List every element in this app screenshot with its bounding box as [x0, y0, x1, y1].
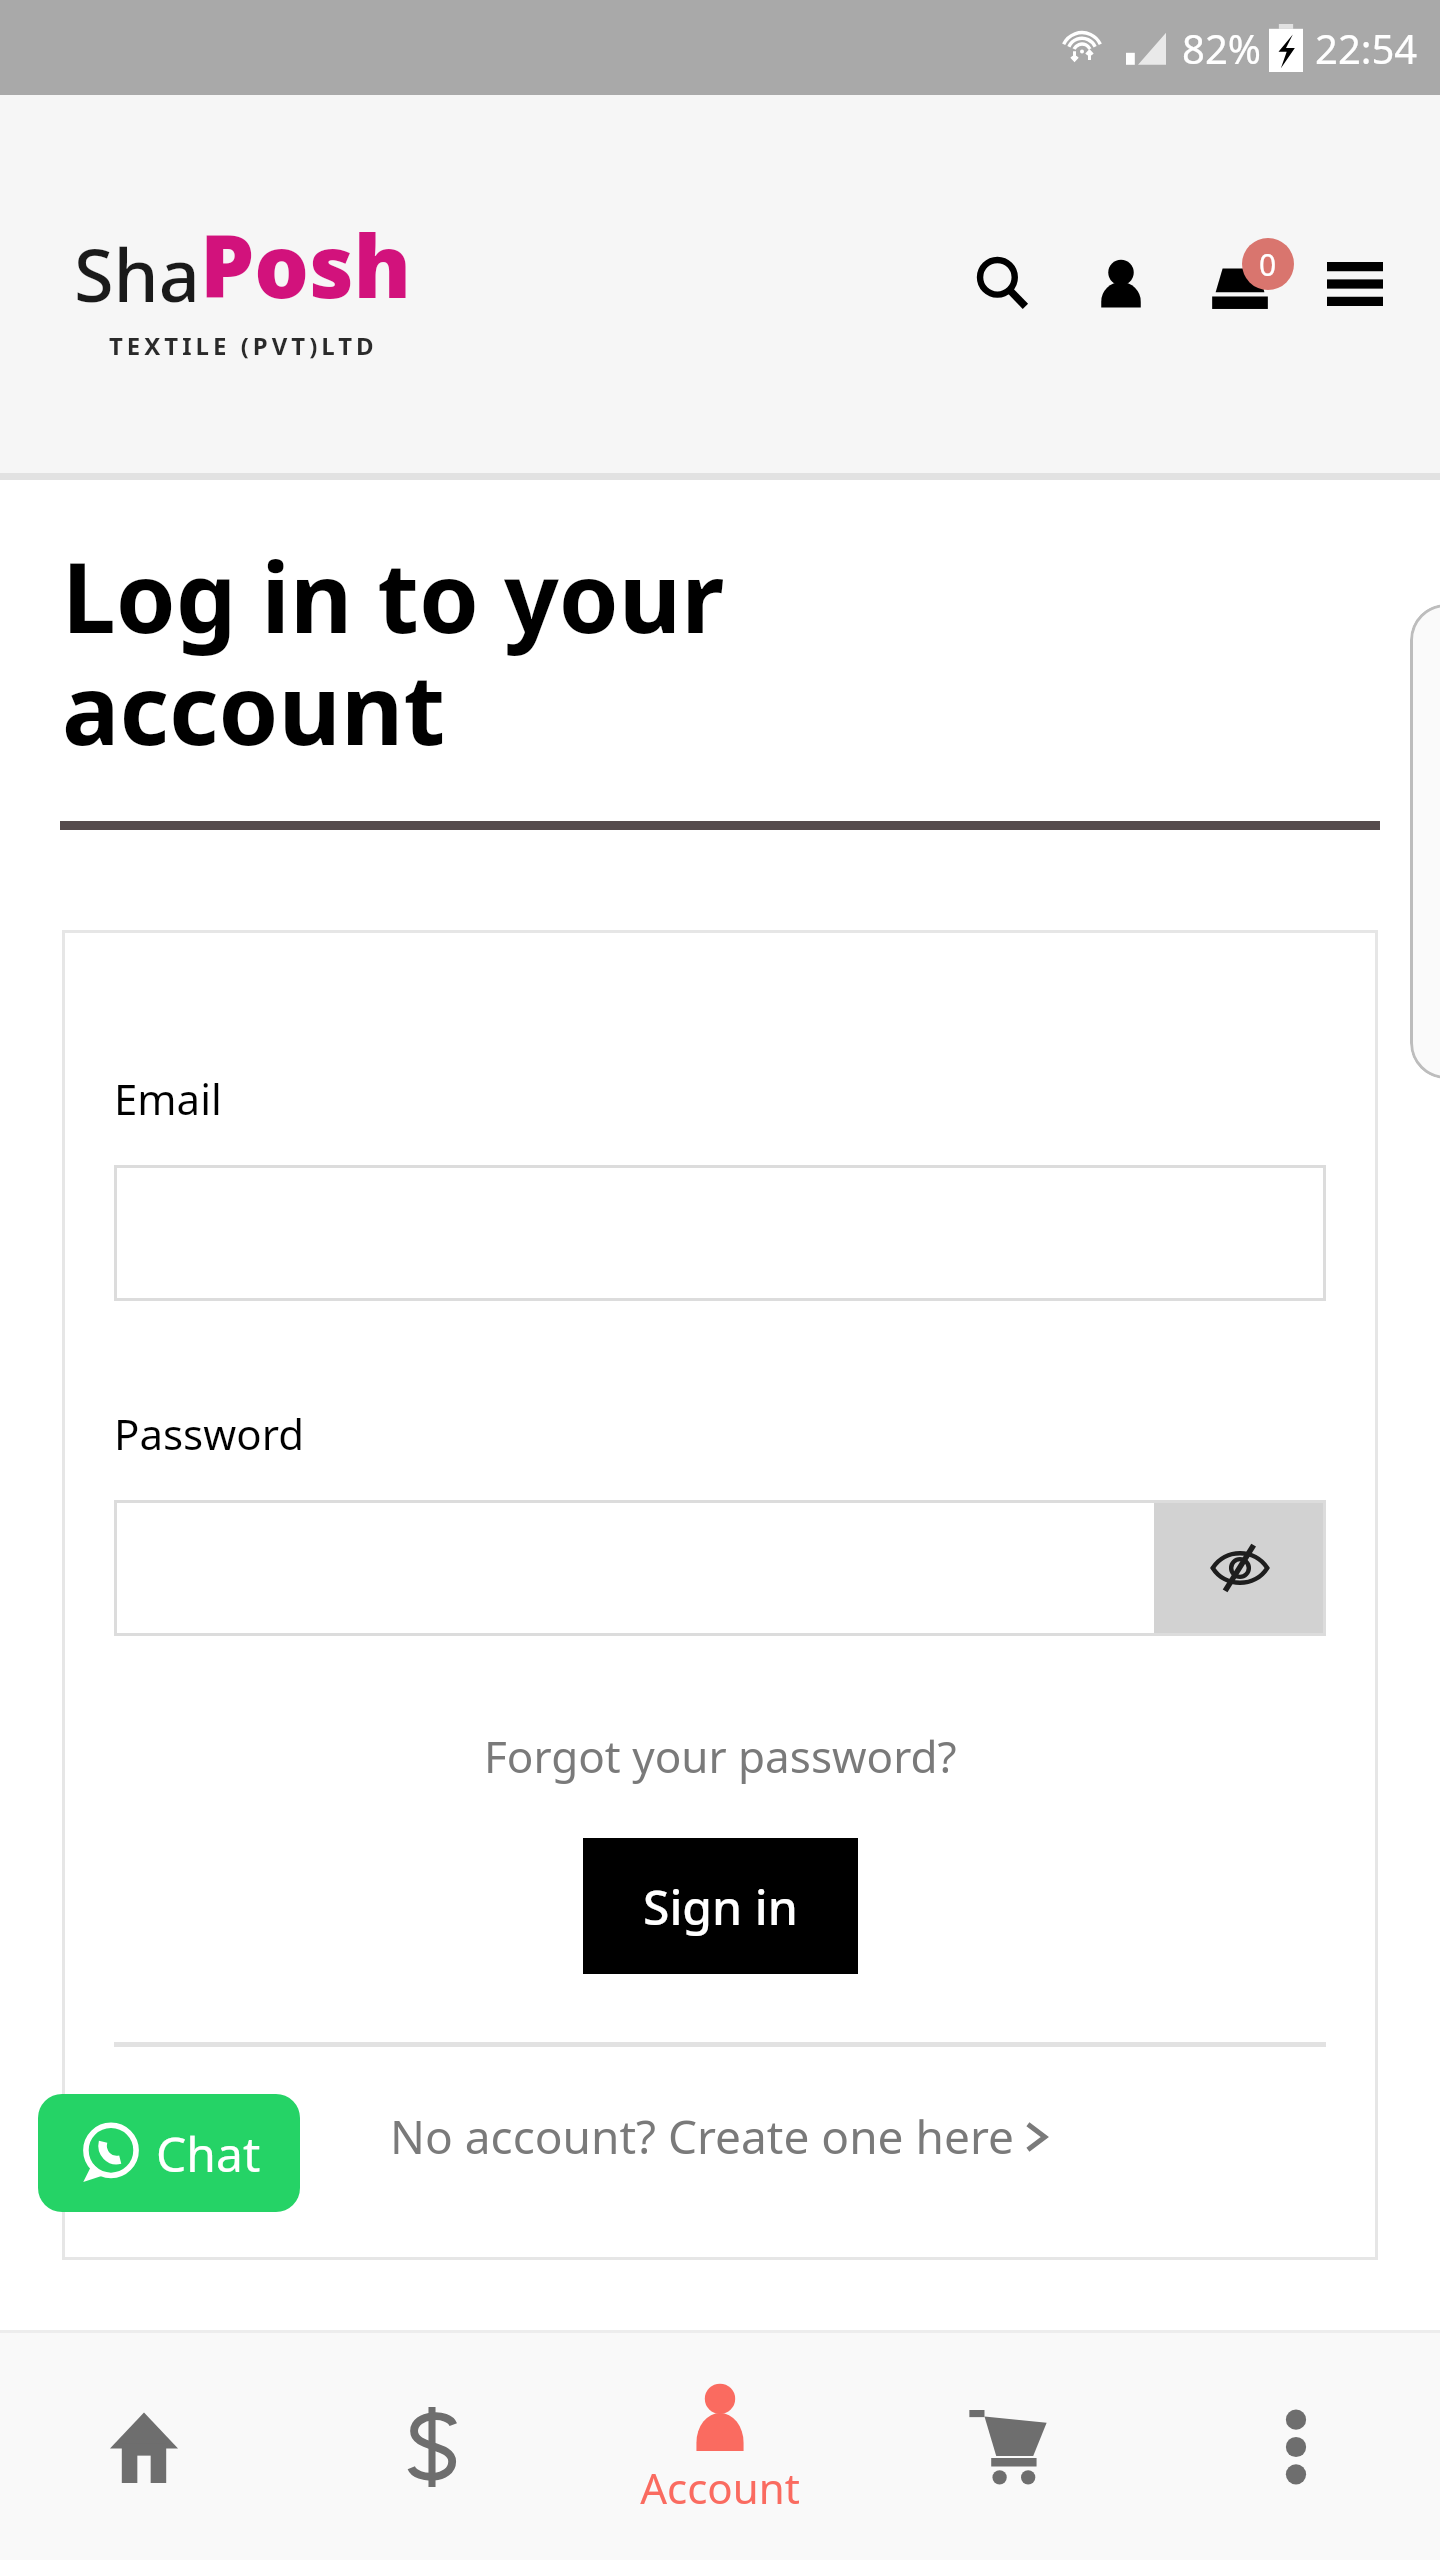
- button[interactable]: [114, 1500, 1154, 1636]
- button[interactable]: More: [1152, 2333, 1440, 2560]
- staticText: Log in to your account: [62, 530, 725, 773]
- staticText: 0: [1259, 244, 1277, 285]
- button[interactable]: [114, 1165, 1326, 1301]
- button[interactable]: Search: [958, 239, 1048, 329]
- button[interactable]: No account? Create one here: [390, 2105, 1050, 2168]
- staticText: Sha: [74, 225, 200, 323]
- button[interactable]: Forgot your password?: [484, 1726, 957, 1786]
- staticText: Sign in: [643, 1874, 798, 1939]
- staticText: Account: [640, 2459, 800, 2516]
- button[interactable]: Show password: [1154, 1500, 1326, 1636]
- button[interactable]: Account: [576, 2333, 864, 2560]
- staticText: TEXTILE (PVT)LTD: [109, 329, 378, 362]
- button[interactable]: Sha: [74, 206, 412, 362]
- button[interactable]: Sign in: [583, 1838, 858, 1974]
- staticText: Password: [114, 1405, 304, 1462]
- staticText: No account? Create one here: [390, 2105, 1014, 2168]
- staticText: 82%: [1182, 21, 1261, 75]
- button[interactable]: Cart: [864, 2333, 1152, 2560]
- button[interactable]: Chat: [38, 2094, 300, 2212]
- button[interactable]: Account: [1076, 239, 1166, 329]
- button[interactable]: Cart: [1192, 236, 1288, 332]
- staticText: Chat: [156, 2121, 261, 2186]
- staticText: Email: [114, 1070, 222, 1127]
- button[interactable]: Prices: [288, 2333, 576, 2560]
- button[interactable]: Home: [0, 2333, 288, 2560]
- staticText: 22:54: [1315, 21, 1418, 75]
- button[interactable]: Menu: [1310, 239, 1400, 329]
- staticText: Posh: [200, 206, 412, 323]
